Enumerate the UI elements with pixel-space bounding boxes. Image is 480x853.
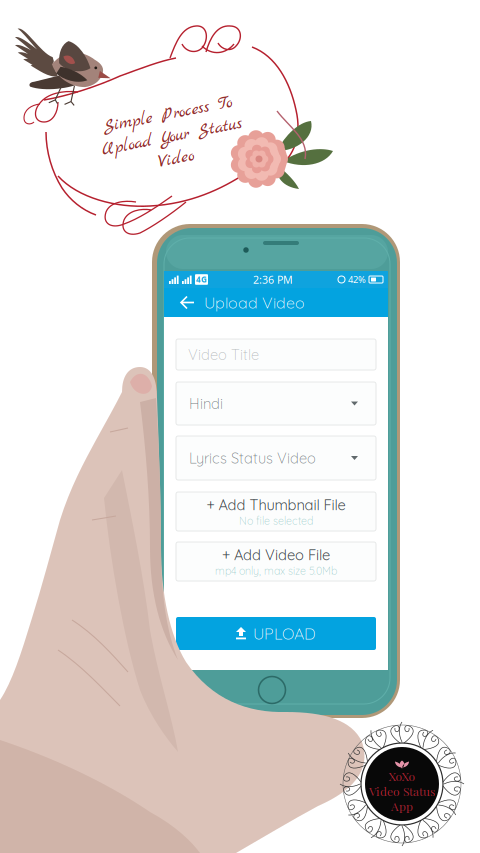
button[interactable]: + Add Video File (176, 542, 376, 581)
staticText: 2:36 PM (253, 272, 293, 287)
staticText: Simple Process To (106, 103, 237, 126)
button[interactable]: + Add Thumbnail File (176, 492, 376, 531)
staticText: Video Title (188, 345, 259, 364)
button[interactable]: UPLOAD (176, 617, 376, 650)
staticText: Lyrics Status Video (189, 449, 316, 467)
staticText: No file selected (239, 514, 313, 527)
staticText: Upload Your Status (100, 126, 243, 148)
staticText: Video Status (369, 783, 435, 799)
staticText: Video (154, 148, 190, 171)
staticText: + Add Thumbnail File (206, 496, 345, 514)
button[interactable]: Lyrics Status Video (176, 436, 376, 480)
staticText: UPLOAD (253, 623, 316, 643)
staticText: 42% (348, 273, 366, 286)
staticText: Hindi (189, 394, 223, 413)
button[interactable]: Video Title (176, 339, 376, 370)
button[interactable]: Hindi (176, 382, 376, 425)
staticText: + Add Video File (222, 546, 330, 564)
staticText: mp4 only, max size 5.0Mb (215, 564, 337, 577)
staticText: 4G (196, 274, 207, 285)
button[interactable]: Back (174, 289, 204, 315)
staticText: App (391, 798, 413, 814)
staticText: Upload Video (204, 292, 305, 312)
button[interactable]: XoXo Video Status App (335, 717, 469, 851)
staticText: XoXo (388, 768, 415, 784)
